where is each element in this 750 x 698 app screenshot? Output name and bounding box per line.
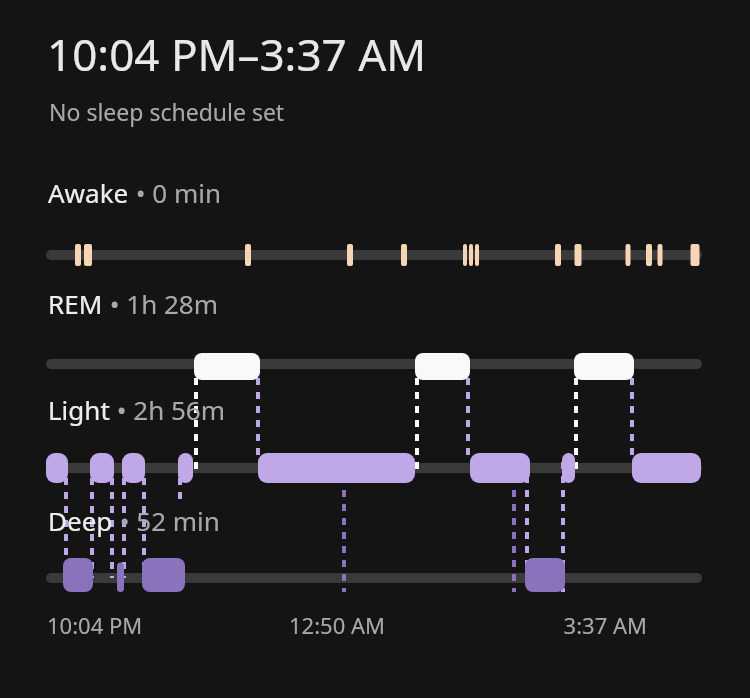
staticText: 10:04 PM–3:37 AM [47,24,427,84]
button[interactable]: Light 2h 56m [48,392,750,427]
staticText: 12:50 AM [227,610,447,640]
staticText: REM [48,286,103,321]
staticText: Light [48,392,110,427]
button[interactable]: Deep 52 min [48,503,750,538]
staticText: • 52 min [113,503,220,538]
button[interactable]: Awake 0 min [48,175,750,210]
staticText: • 1h 28m [103,286,219,321]
button[interactable]: REM 1h 28m [48,286,750,321]
staticText: • 0 min [129,175,222,210]
staticText: 3:37 AM [447,610,647,640]
button[interactable]: 10:04 PM–3:37 AM [0,0,750,698]
staticText: 10:04 PM [47,610,227,640]
staticText: • 2h 56m [110,392,226,427]
staticText: No sleep schedule set [49,96,285,127]
staticText: Deep [48,503,113,538]
staticText: Awake [48,175,129,210]
